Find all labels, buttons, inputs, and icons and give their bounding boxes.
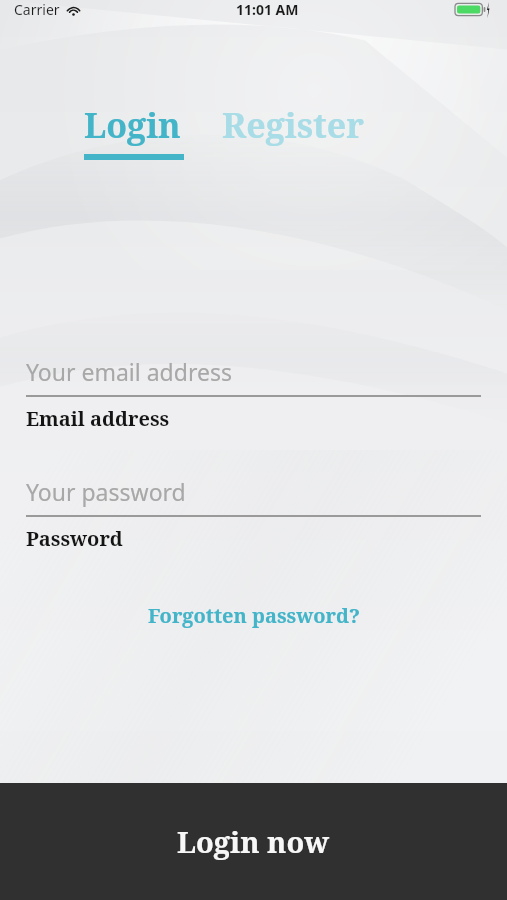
staticText: Forgotten password? bbox=[148, 602, 360, 629]
staticText: 11:01 AM bbox=[236, 0, 299, 19]
button[interactable]: Register bbox=[222, 102, 365, 148]
button[interactable]: Forgotten password? bbox=[0, 598, 507, 633]
staticText: Your email address bbox=[26, 356, 232, 387]
staticText: Login now bbox=[177, 822, 330, 861]
staticText: Password bbox=[26, 525, 123, 552]
staticText: Email address bbox=[26, 405, 170, 432]
staticText: Your password bbox=[26, 476, 186, 507]
staticText: Register bbox=[222, 102, 365, 148]
button[interactable]: Your email address bbox=[26, 356, 481, 387]
button[interactable]: Login bbox=[84, 102, 184, 160]
staticText: Login bbox=[84, 102, 181, 148]
staticText: Carrier bbox=[14, 0, 60, 19]
button[interactable]: Login now bbox=[0, 783, 507, 900]
button[interactable]: Your password bbox=[26, 476, 481, 507]
